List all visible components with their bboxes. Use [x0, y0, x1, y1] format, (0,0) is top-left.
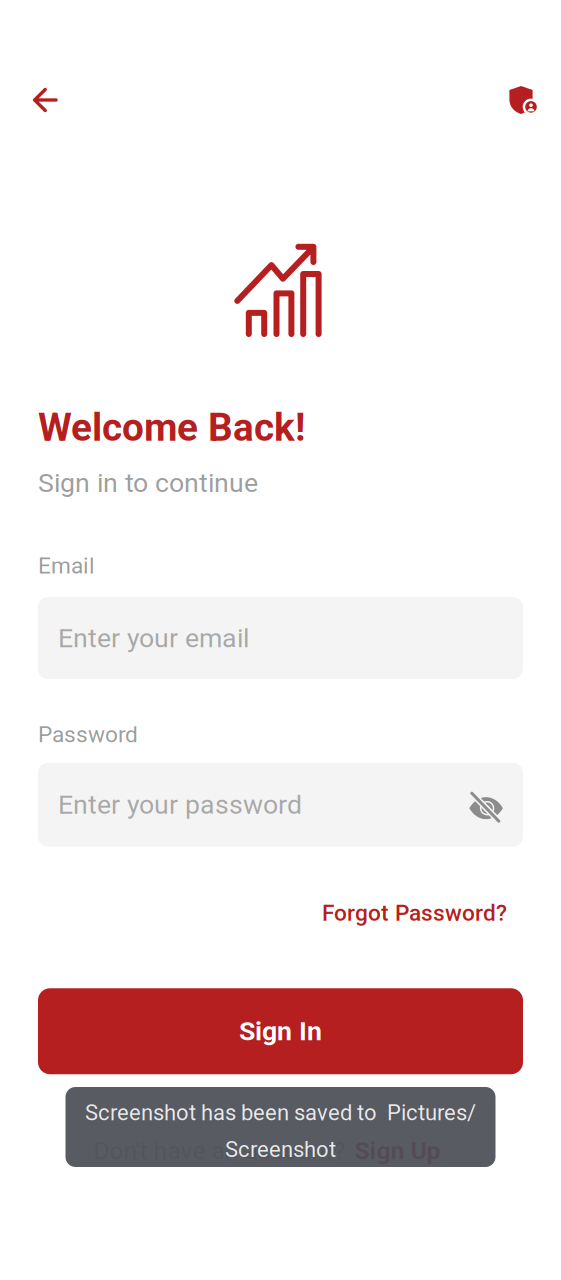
staticText: Don't have an account? — [93, 1136, 351, 1165]
staticText: Screenshot — [225, 1136, 336, 1162]
staticText: Sign In — [239, 1016, 322, 1047]
staticText: Password — [38, 721, 138, 748]
button[interactable]: Back — [22, 77, 68, 123]
staticText: Sign in to continue — [38, 467, 258, 499]
staticText: Email — [38, 553, 95, 579]
staticText: Forgot Password? — [322, 900, 507, 926]
button[interactable]: Forgot Password? — [306, 891, 523, 935]
staticText: Enter your password — [58, 789, 302, 820]
staticText: Welcome Back! — [38, 405, 305, 450]
staticText: Sign Up — [354, 1136, 440, 1165]
button[interactable]: Sign In — [38, 988, 523, 1074]
button[interactable]: Sign Up — [351, 1129, 443, 1172]
staticText: Enter your email — [58, 622, 249, 654]
button[interactable]: Account security — [498, 77, 544, 123]
staticText: Screenshot has been saved to Pictures/ — [85, 1100, 476, 1125]
button[interactable]: Show password — [469, 786, 503, 824]
